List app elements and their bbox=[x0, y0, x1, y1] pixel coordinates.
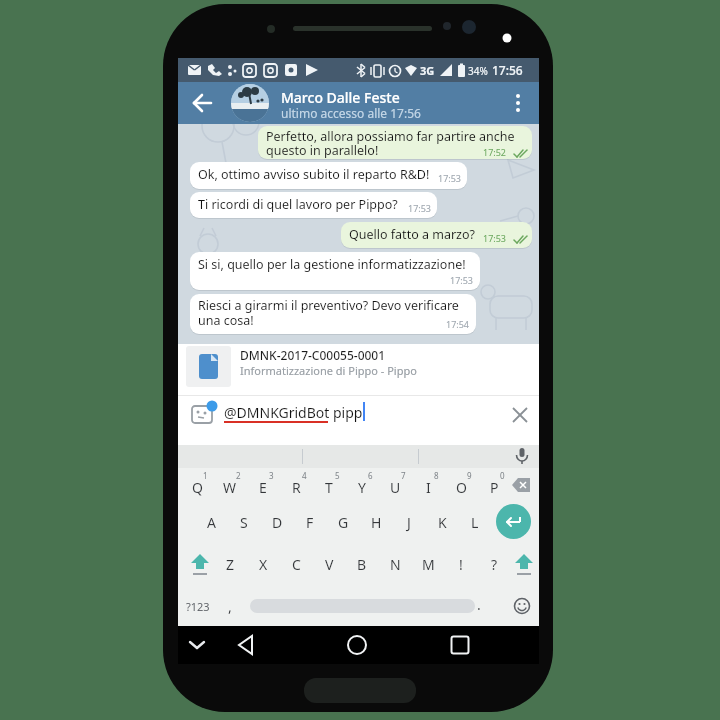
button[interactable]: G bbox=[328, 508, 358, 536]
button[interactable]: ?123 bbox=[180, 594, 216, 618]
button[interactable] bbox=[510, 405, 530, 425]
button[interactable]: 7 bbox=[380, 470, 410, 498]
button[interactable]: Z bbox=[215, 550, 245, 578]
staticText: L bbox=[471, 513, 479, 532]
staticText: 0 bbox=[500, 470, 505, 481]
staticText: 17:56 bbox=[492, 62, 523, 78]
staticText: ! bbox=[459, 555, 463, 574]
button[interactable]: J bbox=[394, 508, 424, 536]
button[interactable]: A bbox=[196, 508, 226, 536]
button[interactable] bbox=[186, 635, 208, 655]
button[interactable] bbox=[512, 552, 536, 578]
button[interactable]: V bbox=[314, 550, 344, 578]
button[interactable]: 8 bbox=[413, 470, 443, 498]
staticText: 5 bbox=[335, 470, 340, 481]
staticText: ultimo accesso alle 17:56 bbox=[281, 105, 421, 121]
staticText: 17:53 bbox=[438, 172, 462, 184]
button[interactable]: ! bbox=[446, 550, 476, 578]
button[interactable] bbox=[508, 88, 528, 118]
staticText: H bbox=[371, 513, 382, 532]
button[interactable]: F bbox=[295, 508, 325, 536]
staticText: 17:53 bbox=[483, 232, 507, 244]
button[interactable]: C bbox=[281, 550, 311, 578]
staticText: 7 bbox=[401, 470, 406, 481]
button[interactable]: 2 bbox=[215, 470, 245, 498]
button[interactable] bbox=[222, 398, 472, 426]
button[interactable] bbox=[231, 84, 269, 122]
button[interactable] bbox=[496, 504, 531, 539]
staticText: 1 bbox=[203, 470, 208, 481]
button[interactable]: 3G bbox=[178, 58, 539, 82]
button[interactable]: D bbox=[262, 508, 292, 536]
button[interactable]: ? bbox=[479, 550, 509, 578]
staticText: 17:53 bbox=[450, 274, 474, 286]
staticText: , bbox=[228, 597, 232, 616]
staticText: N bbox=[390, 555, 401, 574]
staticText: C bbox=[292, 555, 301, 574]
staticText: P bbox=[490, 478, 499, 497]
button[interactable] bbox=[258, 126, 532, 159]
staticText: B bbox=[357, 555, 367, 574]
staticText: Y bbox=[358, 478, 366, 497]
staticText: 3 bbox=[269, 470, 274, 481]
staticText: J bbox=[407, 513, 411, 532]
staticText: Quello fatto a marzo? bbox=[349, 226, 475, 243]
button[interactable]: K bbox=[427, 508, 457, 536]
staticText: 17:53 bbox=[408, 202, 432, 214]
button[interactable]: 4 bbox=[281, 470, 311, 498]
button[interactable] bbox=[512, 445, 532, 468]
button[interactable]: L bbox=[460, 508, 490, 536]
staticText: K bbox=[438, 513, 447, 532]
staticText: 17:54 bbox=[446, 318, 470, 330]
staticText: V bbox=[325, 555, 334, 574]
button[interactable]: S bbox=[229, 508, 259, 536]
staticText: A bbox=[207, 513, 216, 532]
button[interactable] bbox=[346, 634, 368, 656]
staticText: Q bbox=[192, 478, 203, 497]
button[interactable]: 0 bbox=[479, 470, 509, 498]
button[interactable] bbox=[512, 596, 532, 616]
button[interactable] bbox=[190, 192, 437, 218]
button[interactable] bbox=[341, 222, 532, 248]
button[interactable]: 1 bbox=[182, 470, 212, 498]
button[interactable] bbox=[449, 634, 471, 656]
staticText: W bbox=[223, 478, 237, 497]
staticText: Riesci a girarmi il preventivo? Devo ver… bbox=[198, 297, 459, 314]
staticText: T bbox=[325, 478, 333, 497]
button[interactable] bbox=[235, 634, 259, 656]
button[interactable]: 3 bbox=[248, 470, 278, 498]
staticText: 17:52 bbox=[483, 146, 507, 158]
button[interactable]: M bbox=[413, 550, 443, 578]
staticText: 2 bbox=[236, 470, 241, 481]
button[interactable]: H bbox=[361, 508, 391, 536]
button[interactable]: B bbox=[347, 550, 377, 578]
button[interactable] bbox=[190, 252, 480, 290]
button[interactable]: 6 bbox=[347, 470, 377, 498]
button[interactable] bbox=[190, 294, 476, 334]
staticText: Informatizzazione di Pippo - Pippo bbox=[240, 363, 417, 378]
staticText: ? bbox=[491, 555, 498, 574]
staticText: D bbox=[272, 513, 283, 532]
staticText: 9 bbox=[467, 470, 472, 481]
staticText: O bbox=[456, 478, 467, 497]
button[interactable] bbox=[190, 162, 467, 189]
button[interactable]: X bbox=[248, 550, 278, 578]
button[interactable]: 5 bbox=[314, 470, 344, 498]
button[interactable]: 9 bbox=[446, 470, 476, 498]
staticText: Z bbox=[226, 555, 235, 574]
staticText: M bbox=[422, 555, 435, 574]
button[interactable] bbox=[188, 552, 212, 578]
staticText: 8 bbox=[434, 470, 439, 481]
button[interactable] bbox=[506, 476, 532, 494]
staticText: G bbox=[338, 513, 349, 532]
staticText: DMNK-2017-C00055-0001 bbox=[240, 347, 386, 363]
staticText: Perfetto, allora possiamo far partire an… bbox=[266, 128, 515, 145]
button[interactable] bbox=[188, 400, 220, 428]
staticText: ?123 bbox=[186, 599, 210, 614]
staticText: 6 bbox=[368, 470, 373, 481]
button[interactable] bbox=[178, 344, 539, 395]
button[interactable] bbox=[186, 92, 216, 114]
button[interactable]: N bbox=[380, 550, 410, 578]
staticText: I bbox=[426, 478, 431, 497]
